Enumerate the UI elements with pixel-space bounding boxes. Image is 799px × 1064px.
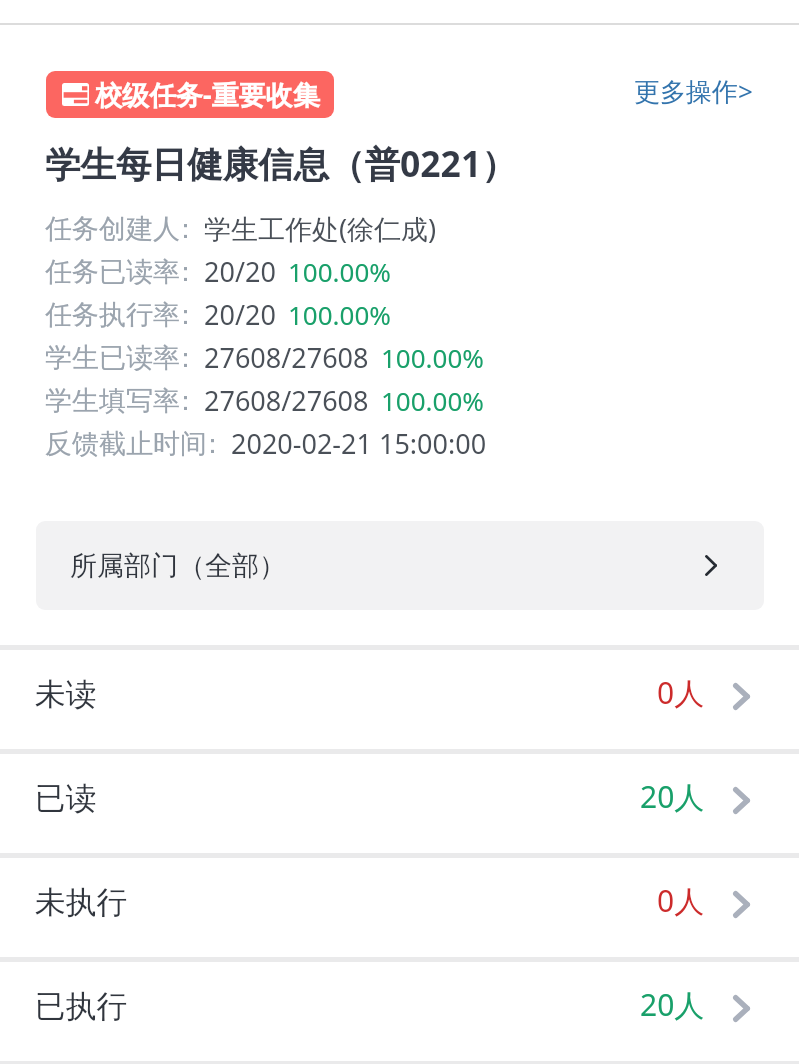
staticText: 所属部门（全部）	[70, 549, 286, 583]
staticText: 学生已读率	[45, 341, 180, 375]
staticText: 任务执行率	[45, 298, 180, 332]
staticText: 已执行	[35, 987, 128, 1026]
staticText: 任务已读率	[45, 255, 180, 289]
staticText: 已读	[35, 779, 97, 818]
other: Open 已执行 list	[733, 995, 750, 1022]
other: Open 未读 list	[733, 683, 750, 710]
staticText: 更多操作>	[634, 73, 753, 109]
staticText: 20人	[640, 984, 705, 1025]
staticText: 27608/27608	[204, 382, 369, 419]
button[interactable]: 所属部门（全部）	[36, 521, 764, 610]
staticText: 20人	[640, 776, 705, 817]
staticText: ：	[172, 255, 196, 289]
staticText: 未执行	[35, 883, 128, 922]
staticText: 0人	[657, 672, 705, 713]
staticText: 0人	[657, 880, 705, 921]
staticText: ：	[172, 341, 196, 375]
staticText: 校级任务-重要收集	[95, 76, 320, 113]
staticText: 2020-02-21 15:00:00	[231, 425, 487, 462]
staticText: 学生每日健康信息（普0221）	[45, 139, 517, 187]
staticText: 100.00%	[381, 383, 484, 418]
staticText: 学生工作处(徐仁成)	[204, 210, 437, 247]
staticText: ：	[172, 212, 196, 246]
other: Open 未执行 list	[733, 891, 750, 918]
other: Open 已读 list	[733, 787, 750, 814]
staticText: 反馈截止时间	[45, 427, 207, 461]
staticText: 20/20	[204, 253, 276, 290]
staticText: ：	[199, 427, 223, 461]
staticText: 27608/27608	[204, 339, 369, 376]
staticText: 学生填写率	[45, 384, 180, 418]
staticText: ：	[172, 384, 196, 418]
staticText: 100.00%	[288, 254, 391, 289]
staticText: 100.00%	[381, 340, 484, 375]
button[interactable]: 已执行	[0, 957, 799, 1056]
staticText: 任务创建人	[45, 212, 180, 246]
button[interactable]: 未执行	[0, 853, 799, 952]
staticText: ：	[172, 298, 196, 332]
staticText: 100.00%	[288, 297, 391, 332]
button[interactable]: 未读	[0, 645, 799, 744]
button[interactable]: 更多操作>	[634, 73, 753, 109]
staticText: 未读	[35, 675, 97, 714]
button[interactable]: 已读	[0, 749, 799, 848]
staticText: 20/20	[204, 296, 276, 333]
